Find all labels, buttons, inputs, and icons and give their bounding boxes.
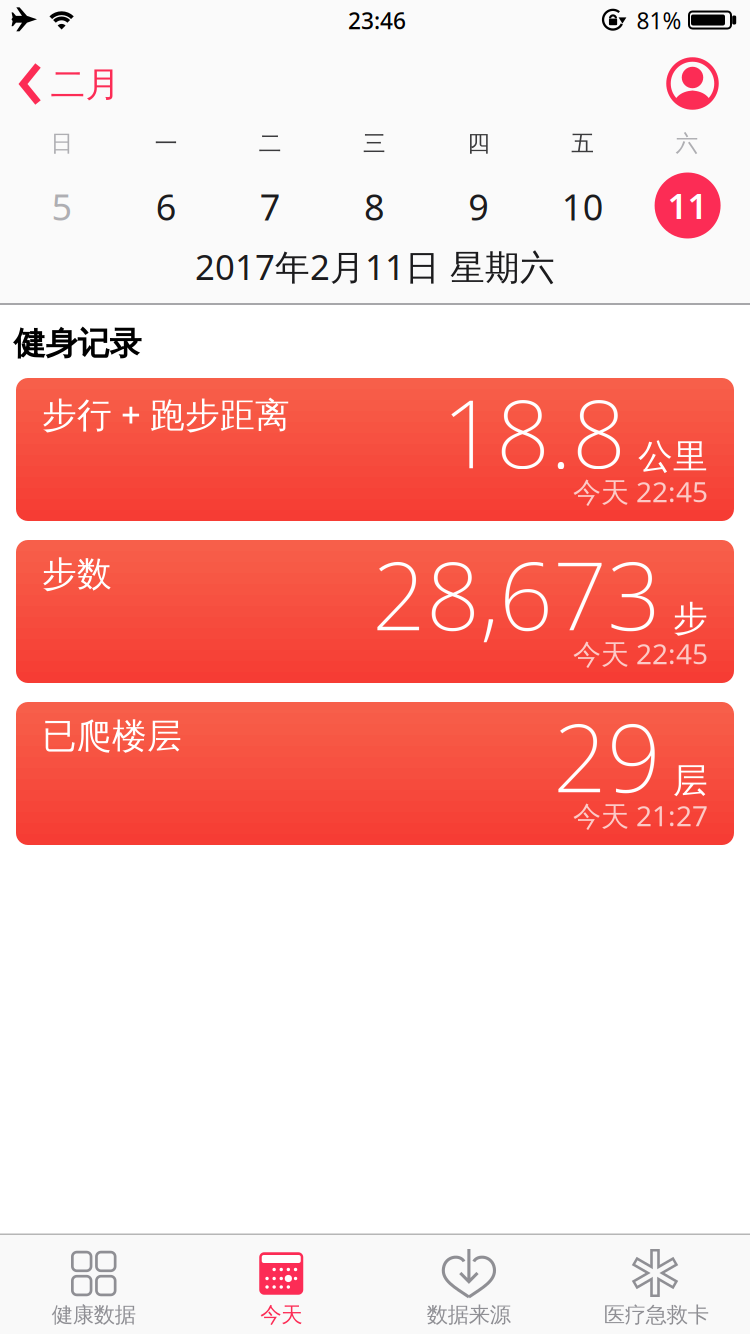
- staticText: 步行 + 跑步距离: [42, 391, 290, 437]
- button[interactable]: 7: [237, 173, 303, 239]
- staticText: 二: [259, 130, 282, 157]
- staticText: 5: [51, 183, 72, 230]
- button[interactable]: 5: [29, 173, 95, 239]
- staticText: 二月: [50, 63, 120, 106]
- staticText: 健康数据: [52, 1302, 136, 1328]
- staticText: 数据来源: [427, 1302, 511, 1328]
- staticText: 一: [155, 130, 178, 157]
- button[interactable]: 步行 + 跑步距离: [16, 378, 734, 521]
- staticText: 6: [156, 183, 177, 230]
- button[interactable]: 已爬楼层: [16, 702, 734, 845]
- button[interactable]: 10: [550, 173, 616, 239]
- staticText: 81%: [636, 5, 681, 35]
- staticText: 2017年2月11日 星期六: [195, 243, 555, 289]
- staticText: 28,673: [372, 531, 661, 656]
- staticText: 五: [571, 130, 594, 157]
- button[interactable]: 医疗急救卡: [562, 1235, 750, 1334]
- button[interactable]: 数据来源: [375, 1235, 562, 1334]
- staticText: 已爬楼层: [42, 715, 182, 758]
- staticText: 步: [673, 597, 708, 640]
- staticText: 六: [675, 130, 698, 157]
- staticText: 29: [553, 693, 661, 818]
- staticText: 今天: [260, 1302, 302, 1328]
- button[interactable]: 步数: [16, 540, 734, 683]
- staticText: 今天 21:27: [573, 797, 708, 834]
- button[interactable]: 二月: [18, 54, 120, 114]
- staticText: 7: [260, 183, 281, 230]
- staticText: 四: [467, 130, 490, 157]
- staticText: 11: [668, 182, 708, 228]
- staticText: 18.8: [442, 369, 626, 494]
- staticText: 医疗急救卡: [604, 1302, 709, 1328]
- button[interactable]: 8: [341, 173, 407, 239]
- button[interactable]: 11: [655, 172, 721, 238]
- staticText: 10: [562, 183, 604, 230]
- button[interactable]: 9: [446, 173, 512, 239]
- button[interactable]: 健康资料: [666, 57, 719, 110]
- staticText: 公里: [638, 435, 708, 478]
- staticText: 8: [364, 183, 385, 230]
- staticText: 步数: [42, 553, 112, 596]
- staticText: 23:46: [348, 5, 406, 35]
- staticText: 健身记录: [13, 324, 141, 363]
- staticText: 9: [468, 183, 489, 230]
- staticText: 今天 22:45: [573, 635, 708, 672]
- staticText: 三: [363, 130, 386, 157]
- button[interactable]: 今天: [187, 1235, 375, 1334]
- button[interactable]: 健康数据: [0, 1235, 187, 1334]
- staticText: 今天 22:45: [573, 473, 708, 510]
- staticText: 层: [673, 759, 708, 802]
- button[interactable]: 6: [133, 173, 199, 239]
- staticText: 日: [50, 130, 73, 157]
